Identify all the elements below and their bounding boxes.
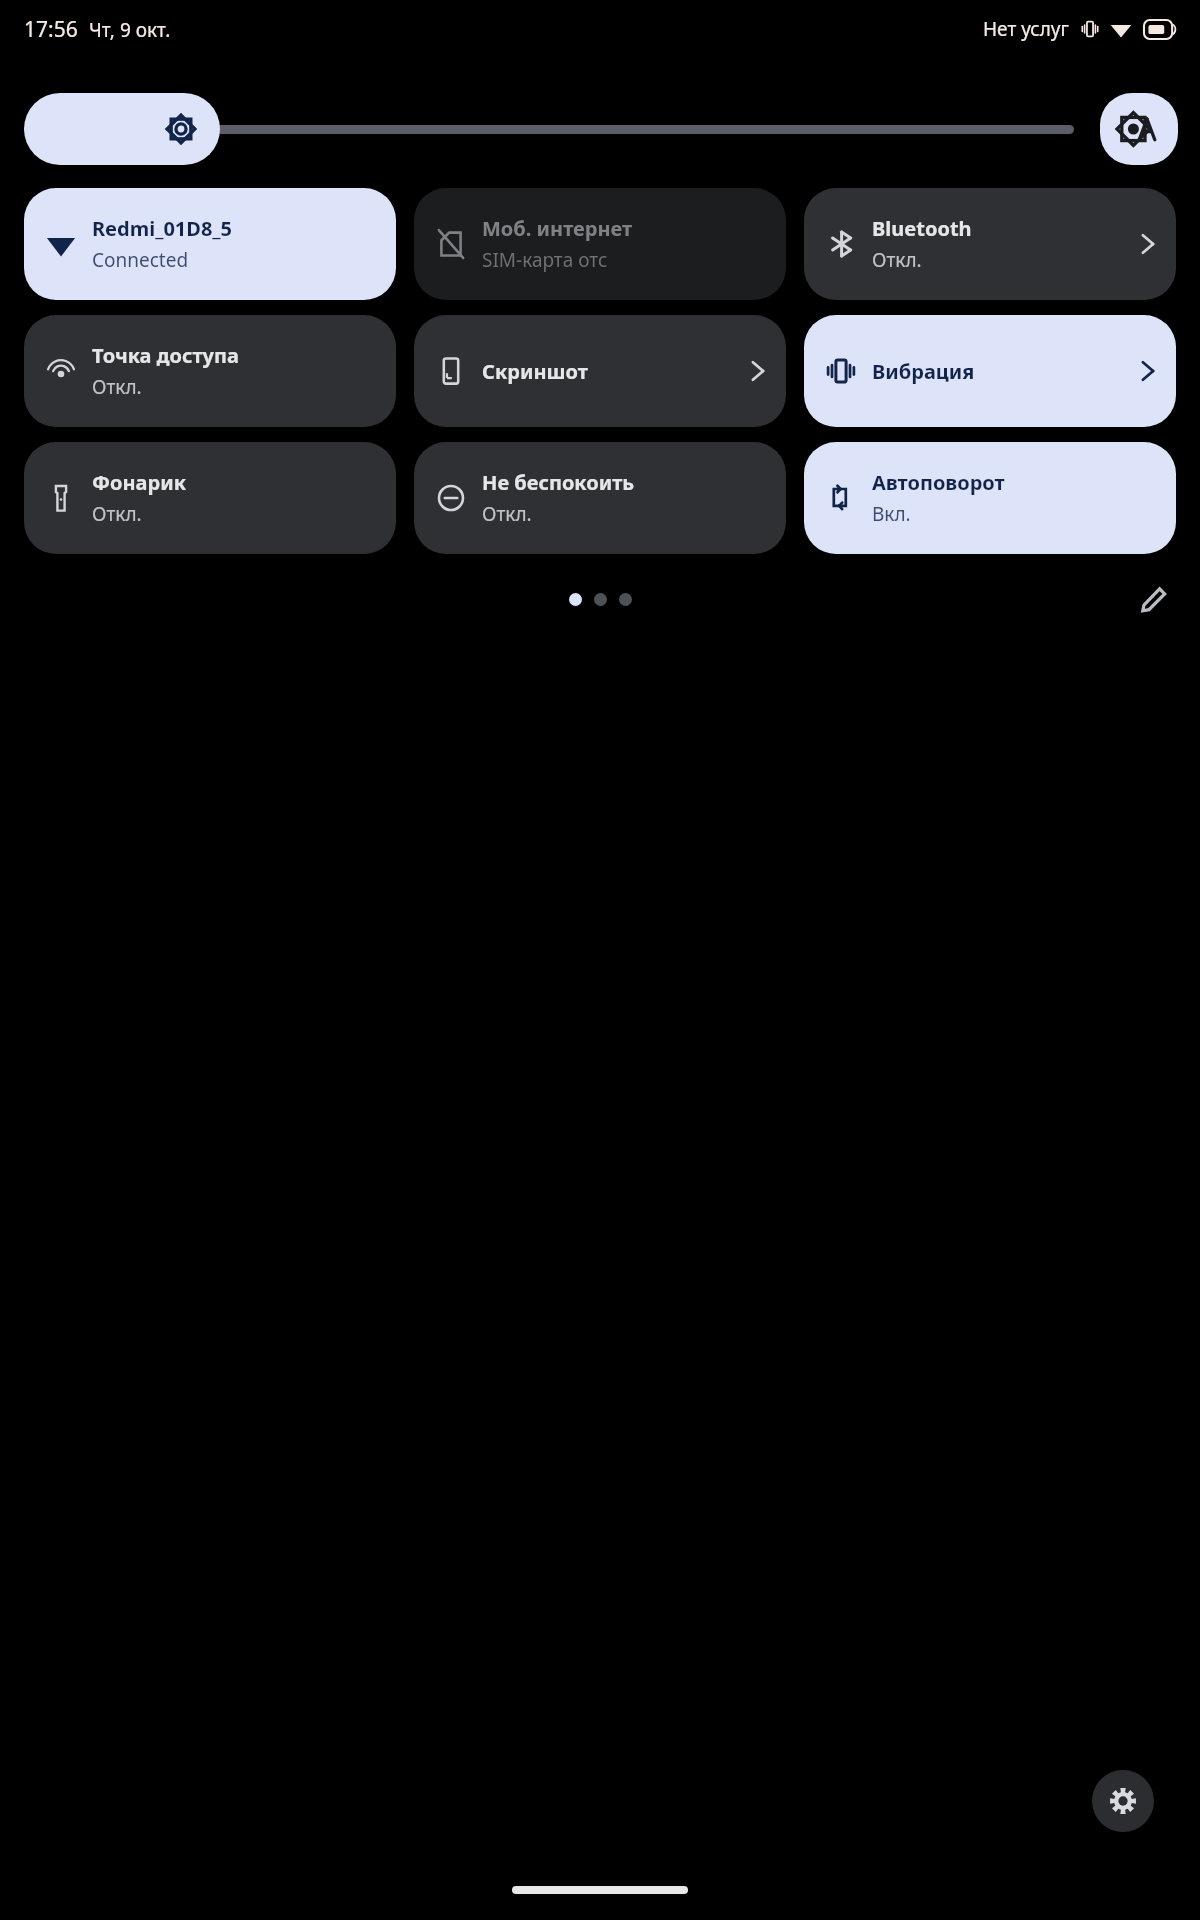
button[interactable]: Brightness (24, 93, 1074, 165)
staticText: SIM-карта отс (482, 247, 608, 273)
staticText: 17:56 (24, 15, 78, 44)
staticText: Нет услуг (983, 16, 1069, 42)
button[interactable]: Вибрация (804, 315, 1176, 427)
staticText: Откл. (92, 374, 142, 400)
staticText: Redmi_01D8_5 (92, 215, 233, 242)
staticText: Откл. (92, 501, 142, 527)
button[interactable]: Settings (1092, 1770, 1154, 1832)
button[interactable]: Не беспокоить (414, 442, 786, 554)
staticText: Connected (92, 247, 189, 273)
staticText: Чт, 9 окт. (89, 17, 171, 43)
button[interactable]: Edit tiles (1130, 575, 1178, 623)
button[interactable]: Точка доступа (24, 315, 396, 427)
staticText: Откл. (872, 247, 922, 273)
button[interactable]: Bluetooth (804, 188, 1176, 300)
button[interactable]: Моб. интернет (414, 188, 786, 300)
staticText: Скриншот (482, 358, 588, 385)
staticText: Bluetooth (872, 215, 972, 242)
button[interactable]: Автоповорот (804, 442, 1176, 554)
button[interactable]: Фонарик (24, 442, 396, 554)
staticText: Фонарик (92, 469, 186, 496)
button[interactable]: Auto brightness (1100, 93, 1178, 165)
staticText: Не беспокоить (482, 469, 635, 496)
staticText: Точка доступа (92, 342, 239, 369)
staticText: Откл. (482, 501, 532, 527)
button[interactable]: Скриншот (414, 315, 786, 427)
staticText: Моб. интернет (482, 215, 633, 242)
staticText: Вибрация (872, 358, 975, 385)
button[interactable]: Redmi_01D8_5 (24, 188, 396, 300)
staticText: Автоповорот (872, 469, 1005, 496)
staticText: Вкл. (872, 501, 911, 527)
